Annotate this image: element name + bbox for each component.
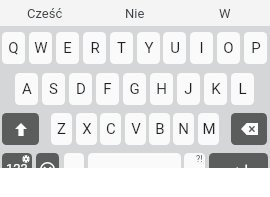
- staticText: 123: [6, 161, 28, 168]
- staticText: H: [156, 80, 167, 98]
- staticText: X: [82, 120, 92, 138]
- button[interactable]: S: [42, 73, 65, 105]
- button[interactable]: Punctuation: [184, 153, 205, 168]
- staticText: ?!: [196, 154, 203, 165]
- button[interactable]: T: [110, 32, 133, 64]
- button[interactable]: E: [56, 32, 79, 64]
- staticText: L: [238, 80, 247, 98]
- button[interactable]: M: [198, 113, 219, 145]
- button[interactable]: U: [163, 32, 186, 64]
- button[interactable]: Comma: [64, 153, 84, 168]
- button[interactable]: J: [177, 73, 200, 105]
- button[interactable]: Nie: [90, 0, 180, 26]
- staticText: Z: [57, 120, 66, 138]
- button[interactable]: Emoji: [36, 153, 59, 168]
- button[interactable]: G: [123, 73, 146, 105]
- staticText: W: [34, 39, 48, 57]
- button[interactable]: Y: [137, 32, 160, 64]
- staticText: D: [76, 80, 86, 98]
- button[interactable]: A: [15, 73, 38, 105]
- staticText: O: [223, 39, 234, 57]
- button[interactable]: W: [180, 0, 270, 26]
- staticText: W: [219, 6, 231, 21]
- staticText: I: [199, 39, 204, 57]
- staticText: A: [22, 80, 32, 98]
- button[interactable]: X: [76, 113, 97, 145]
- staticText: P: [251, 39, 261, 57]
- button[interactable]: Backspace: [231, 113, 267, 145]
- button[interactable]: D: [69, 73, 92, 105]
- staticText: Cześć: [27, 6, 63, 21]
- staticText: F: [103, 80, 112, 98]
- button[interactable]: H: [150, 73, 173, 105]
- staticText: G: [129, 80, 140, 98]
- button[interactable]: Q: [2, 32, 25, 64]
- staticText: R: [90, 39, 100, 57]
- staticText: V: [131, 120, 141, 138]
- staticText: K: [211, 80, 221, 98]
- button[interactable]: F: [96, 73, 119, 105]
- staticText: J: [184, 80, 193, 98]
- button[interactable]: K: [204, 73, 227, 105]
- staticText: N: [178, 120, 189, 138]
- staticText: Nie: [125, 6, 145, 21]
- button[interactable]: L: [231, 73, 254, 105]
- button[interactable]: P: [244, 32, 267, 64]
- button[interactable]: N: [173, 113, 194, 145]
- staticText: E: [63, 39, 72, 57]
- button[interactable]: B: [149, 113, 170, 145]
- staticText: S: [49, 80, 58, 98]
- button[interactable]: Shift: [2, 113, 39, 145]
- button[interactable]: C: [100, 113, 121, 145]
- staticText: T: [117, 39, 126, 57]
- staticText: M: [202, 120, 216, 138]
- staticText: U: [170, 39, 180, 57]
- button[interactable]: I: [190, 32, 213, 64]
- button[interactable]: R: [83, 32, 106, 64]
- button[interactable]: V: [125, 113, 146, 145]
- button[interactable]: Z: [51, 113, 72, 145]
- button[interactable]: Cześć: [0, 0, 90, 26]
- staticText: C: [106, 120, 116, 138]
- button[interactable]: W: [29, 32, 52, 64]
- staticText: B: [155, 120, 165, 138]
- button[interactable]: Symbols: [2, 153, 32, 168]
- button[interactable]: Enter: [209, 153, 268, 168]
- staticText: Y: [144, 39, 154, 57]
- button[interactable]: O: [217, 32, 240, 64]
- staticText: Q: [8, 39, 19, 57]
